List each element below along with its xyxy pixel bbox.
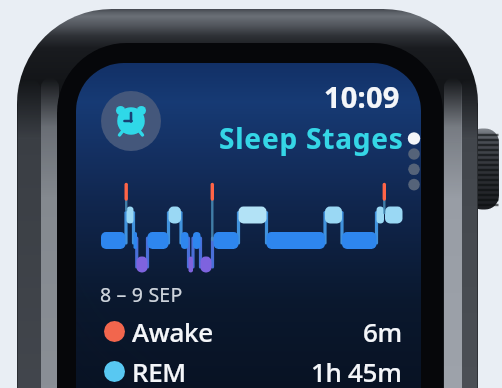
staticText: 8 – 9 SEP (100, 281, 183, 308)
staticText: 1h 45m (311, 354, 402, 388)
button[interactable]: Awake (104, 311, 402, 351)
staticText: 10:09 (324, 77, 400, 116)
staticText: REM (132, 354, 186, 388)
staticText: Sleep Stages (219, 119, 404, 157)
button[interactable]: REM (104, 351, 402, 388)
staticText: 6m (363, 314, 402, 349)
button[interactable] (101, 91, 161, 151)
staticText: Awake (132, 314, 213, 349)
